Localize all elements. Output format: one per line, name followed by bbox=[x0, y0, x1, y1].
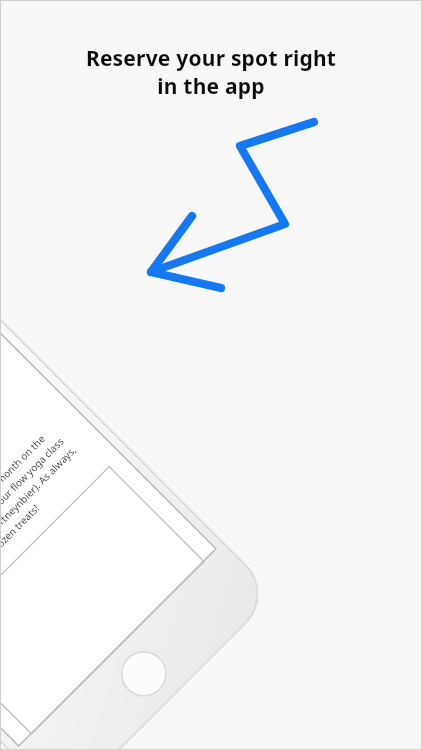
staticText: Reserve your spot right in the app bbox=[0, 44, 422, 100]
other: Arrow pointing to Sign Up button bbox=[0, 0, 422, 750]
button[interactable]: Home bbox=[110, 640, 178, 708]
staticText: We're kicking it off outdoors this month… bbox=[0, 414, 98, 628]
button[interactable] bbox=[0, 467, 204, 734]
